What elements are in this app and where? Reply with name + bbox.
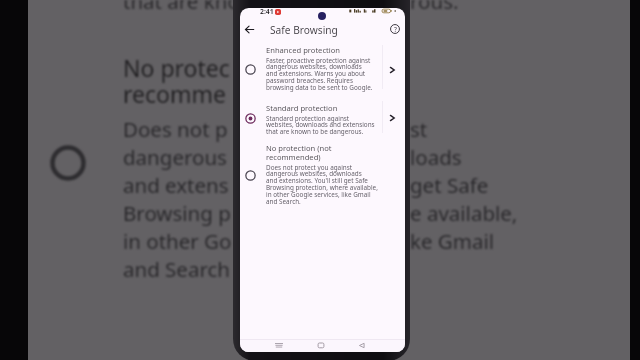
staticText: recomme	[123, 78, 226, 109]
button[interactable]	[240, 98, 405, 136]
staticText: ?	[394, 25, 397, 34]
button[interactable]: Recents	[271, 341, 287, 349]
staticText: rous.	[410, 0, 459, 15]
button[interactable]	[240, 139, 405, 205]
button[interactable]: Back	[240, 20, 258, 38]
button[interactable]: Home	[313, 341, 329, 349]
staticText: get Safe	[410, 171, 489, 199]
staticText: Does not p	[123, 115, 228, 143]
staticText: and extens	[123, 171, 229, 199]
button[interactable]: Help	[386, 20, 404, 38]
staticText: Does not protect you against dangerous w…	[266, 163, 378, 206]
staticText: in other Go	[123, 227, 232, 255]
staticText: Standard protection	[266, 103, 338, 113]
staticText: and Search	[123, 255, 230, 283]
staticText: Standard protection against websites, do…	[266, 114, 375, 136]
staticText: ke Gmail	[410, 227, 495, 255]
staticText: loads	[410, 143, 462, 171]
staticText: st	[410, 115, 428, 143]
button[interactable]	[240, 42, 405, 92]
staticText: No protec	[123, 52, 230, 83]
staticText: Browsing p	[123, 199, 231, 227]
staticText: 2:41	[260, 8, 274, 16]
staticText: e available,	[410, 199, 518, 227]
button[interactable]: Back	[354, 341, 370, 349]
staticText: Faster, proactive protection against dan…	[266, 56, 373, 92]
staticText: Safe Browsing	[270, 23, 338, 37]
staticText: that are kno	[123, 0, 240, 15]
staticText: No protection (not recommended)	[266, 143, 332, 162]
staticText: dangerous	[123, 143, 227, 171]
staticText: Enhanced protection	[266, 45, 341, 55]
